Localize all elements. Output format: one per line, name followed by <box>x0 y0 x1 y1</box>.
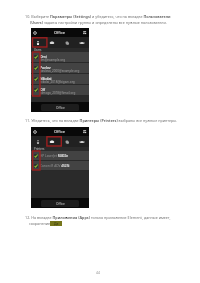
button[interactable]: Tab 1 <box>31 136 45 147</box>
staticText: Office <box>54 30 66 35</box>
button[interactable]: Tab 3 <box>59 37 74 48</box>
staticText: HP LaserJet M402n <box>40 154 69 158</box>
button[interactable]: Tab 1 <box>31 37 45 48</box>
button[interactable]: Office <box>41 200 79 207</box>
staticText: 11. Убедитесь, что на вкладке Принтеры (… <box>25 118 178 123</box>
staticText: nikolai_2018@bigsvc.org <box>40 80 75 84</box>
button[interactable]: Back <box>32 30 38 36</box>
staticText: Printers <box>34 147 45 151</box>
button[interactable]: Olf <box>31 85 89 96</box>
staticText: Users <box>34 48 42 52</box>
button[interactable]: Canon iR ADV 4525i <box>31 161 89 171</box>
staticText: dm@example.org <box>40 58 66 62</box>
button[interactable]: HP LaserJet M402n <box>31 151 89 161</box>
staticText: Office <box>56 106 65 110</box>
button[interactable]: Tab 3 <box>59 136 74 147</box>
staticText: Nikolai <box>40 76 52 81</box>
button[interactable]: Tab 2 <box>45 37 59 48</box>
button[interactable]: Options <box>82 129 88 135</box>
staticText: 44 <box>96 270 100 275</box>
button[interactable]: Tab 4 <box>74 37 89 48</box>
staticText: pavlova_2000@example.org <box>40 69 80 73</box>
button[interactable]: Pavlov <box>31 63 89 74</box>
staticText: olmogo_2018@fimail.org <box>40 91 76 95</box>
staticText: Да <box>54 221 59 226</box>
button[interactable]: Back <box>32 129 38 135</box>
staticText: Office <box>56 202 65 206</box>
staticText: Canon iR ADV 4525i <box>40 164 70 168</box>
staticText: 12. На вкладке Приложения (Apps) только … <box>25 215 171 220</box>
button[interactable]: Options <box>82 30 88 36</box>
button[interactable]: Dmi <box>31 52 89 63</box>
staticText: (Users) заданы настройки группы и опреде… <box>30 20 167 25</box>
staticText: 10. Выберите Параметры (Settings) и убед… <box>25 14 171 19</box>
staticText: сохранение <box>29 221 51 226</box>
button[interactable]: Office <box>41 104 79 111</box>
staticText: Office <box>54 129 66 134</box>
staticText: Pavlov <box>40 65 51 70</box>
button[interactable]: Tab 2 <box>45 136 59 147</box>
staticText: Dmi <box>40 54 47 59</box>
button[interactable]: Nikolai <box>31 74 89 85</box>
button[interactable]: Tab 4 <box>74 136 89 147</box>
staticText: Olf <box>40 87 45 92</box>
